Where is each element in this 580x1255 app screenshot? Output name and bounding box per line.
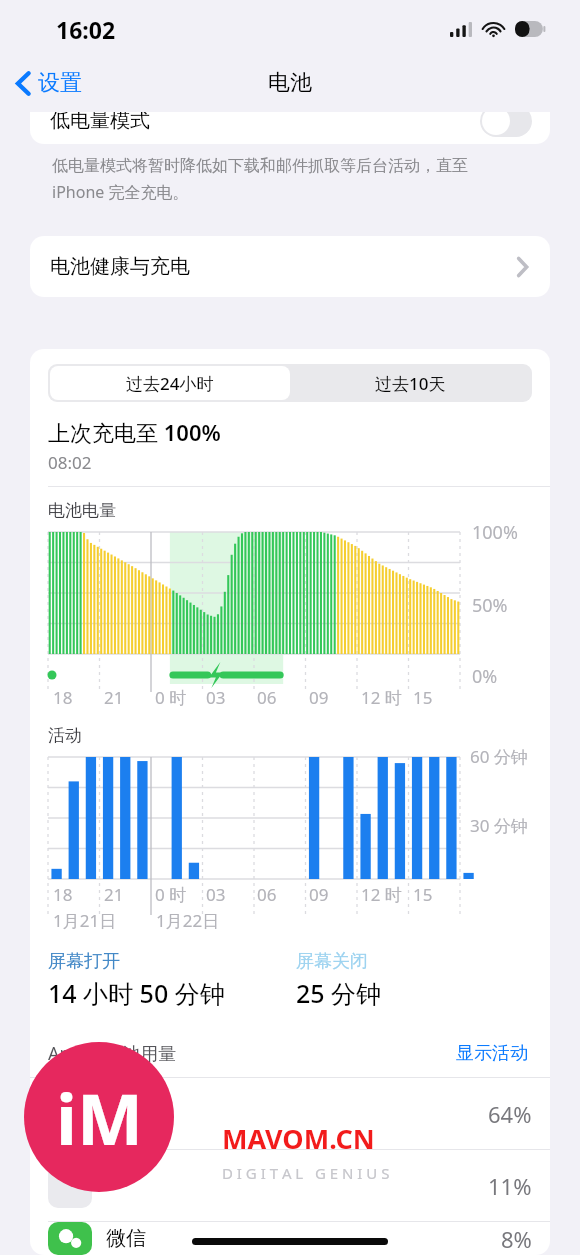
staticText: 荣耀 xyxy=(106,1101,146,1126)
staticText: 100% xyxy=(472,520,518,545)
staticText: 12 时 xyxy=(361,686,402,709)
staticText: 18 xyxy=(53,686,73,709)
staticText: 03 xyxy=(206,883,226,906)
staticText: 电池健康与充电 xyxy=(50,254,190,279)
button[interactable]: 设置 xyxy=(0,63,96,103)
staticText: 过去24小时 xyxy=(126,372,214,395)
staticText: 0% xyxy=(472,664,498,686)
staticText: 18 xyxy=(53,883,73,906)
staticText: App 的电池用量 xyxy=(48,1041,177,1066)
staticText: 12 时 xyxy=(361,883,402,906)
staticText: 上次充电至 100% xyxy=(48,417,221,447)
staticText: 屏幕关闭 xyxy=(296,950,368,973)
staticText: 21 xyxy=(104,686,124,709)
staticText: 0 时 xyxy=(155,686,187,709)
staticText: 60 分钟 xyxy=(470,745,528,768)
staticText: 过去10天 xyxy=(375,372,446,395)
staticText: 30 分钟 xyxy=(470,814,528,837)
staticText: 50% xyxy=(472,593,508,618)
staticText: 11% xyxy=(488,1171,532,1201)
staticText: 8% xyxy=(501,1224,532,1254)
staticText: 03 xyxy=(206,686,226,709)
staticText: 09 xyxy=(309,686,329,709)
staticText: 屏幕打开 xyxy=(48,950,120,973)
staticText: 1月21日 xyxy=(53,909,117,932)
staticText: 1月22日 xyxy=(156,909,220,932)
staticText: MAVOM.CN xyxy=(222,1120,375,1157)
staticText: 16:02 xyxy=(56,14,116,45)
staticText: 15 xyxy=(413,883,433,906)
staticText: 08:02 xyxy=(48,451,92,474)
button[interactable]: 低电量模式 xyxy=(30,112,550,144)
staticText: 低电量模式将暂时降低如下载和邮件抓取等后台活动，直至 xyxy=(52,156,468,176)
staticText: 64% xyxy=(488,1099,532,1129)
button[interactable]: 荣耀 xyxy=(30,1078,550,1149)
button[interactable]: 显示活动 xyxy=(452,1038,532,1069)
staticText: 0 时 xyxy=(155,883,187,906)
staticText: 低电量模式 xyxy=(50,112,150,133)
staticText: 活动 xyxy=(48,725,82,746)
staticText: D I G I T A L G E N I U S xyxy=(222,1163,390,1183)
staticText: 14 小时 50 分钟 xyxy=(48,976,225,1010)
button[interactable]: 过去24小时 xyxy=(50,366,290,400)
staticText: iM xyxy=(56,1070,143,1165)
staticText: 微信 xyxy=(106,1226,146,1251)
staticText: 21 xyxy=(104,883,124,906)
staticText: iPhone 完全充电。 xyxy=(52,181,189,203)
staticText: 15 xyxy=(413,686,433,709)
other: Open battery health xyxy=(517,257,528,277)
button[interactable]: 过去10天 xyxy=(290,366,530,400)
staticText: 06 xyxy=(257,686,277,709)
button[interactable]: 11% xyxy=(30,1150,550,1221)
button[interactable]: 微信 xyxy=(30,1222,550,1255)
staticText: 电池电量 xyxy=(48,500,116,521)
staticText: 设置 xyxy=(38,69,82,97)
staticText: 电池 xyxy=(268,69,312,97)
staticText: 显示活动 xyxy=(456,1042,528,1065)
staticText: 06 xyxy=(257,883,277,906)
button[interactable]: 电池健康与充电 xyxy=(30,236,550,297)
staticText: 25 分钟 xyxy=(296,976,382,1010)
staticText: 09 xyxy=(309,883,329,906)
